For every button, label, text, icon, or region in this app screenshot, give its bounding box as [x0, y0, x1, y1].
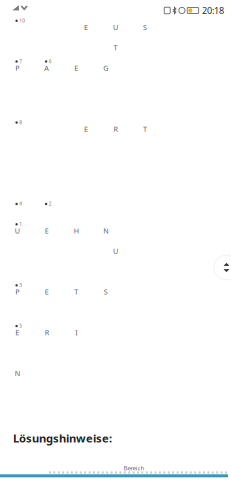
staticText: S — [104, 287, 108, 297]
staticText: R — [45, 327, 49, 337]
staticText: N — [15, 368, 20, 378]
staticText: 5 — [19, 323, 22, 329]
staticText: N — [103, 226, 108, 236]
staticText: E — [45, 226, 49, 236]
staticText: 3 — [19, 282, 22, 288]
staticText: S — [143, 22, 147, 32]
staticText: U — [15, 226, 20, 236]
staticText: E — [45, 287, 49, 297]
staticText: U — [113, 22, 118, 32]
staticText: 10 — [19, 17, 25, 24]
staticText: 20:18 — [202, 4, 224, 17]
staticText: E — [74, 63, 78, 73]
staticText: T — [74, 287, 78, 297]
staticText: E — [15, 327, 19, 337]
staticText: I — [75, 327, 77, 337]
staticText: 6 — [49, 58, 52, 64]
staticText: G — [103, 63, 108, 73]
staticText: 2 — [49, 200, 52, 207]
staticText: A — [44, 63, 49, 73]
staticText: R — [113, 124, 117, 134]
staticText: 7 — [19, 58, 22, 64]
staticText: U — [113, 246, 118, 256]
staticText: T — [143, 124, 147, 134]
staticText: P — [15, 287, 19, 297]
staticText: Lösungshinweise: — [13, 430, 112, 446]
staticText: P — [15, 63, 19, 73]
staticText: 8 — [19, 119, 22, 126]
staticText: T — [113, 43, 117, 52]
button[interactable]: Scroll to section — [214, 255, 231, 280]
staticText: H — [74, 226, 79, 236]
staticText: 4 — [19, 200, 22, 207]
staticText: E — [84, 124, 88, 134]
staticText: E — [84, 22, 88, 32]
staticText: Bereich — [123, 464, 144, 472]
staticText: 1 — [19, 221, 22, 227]
